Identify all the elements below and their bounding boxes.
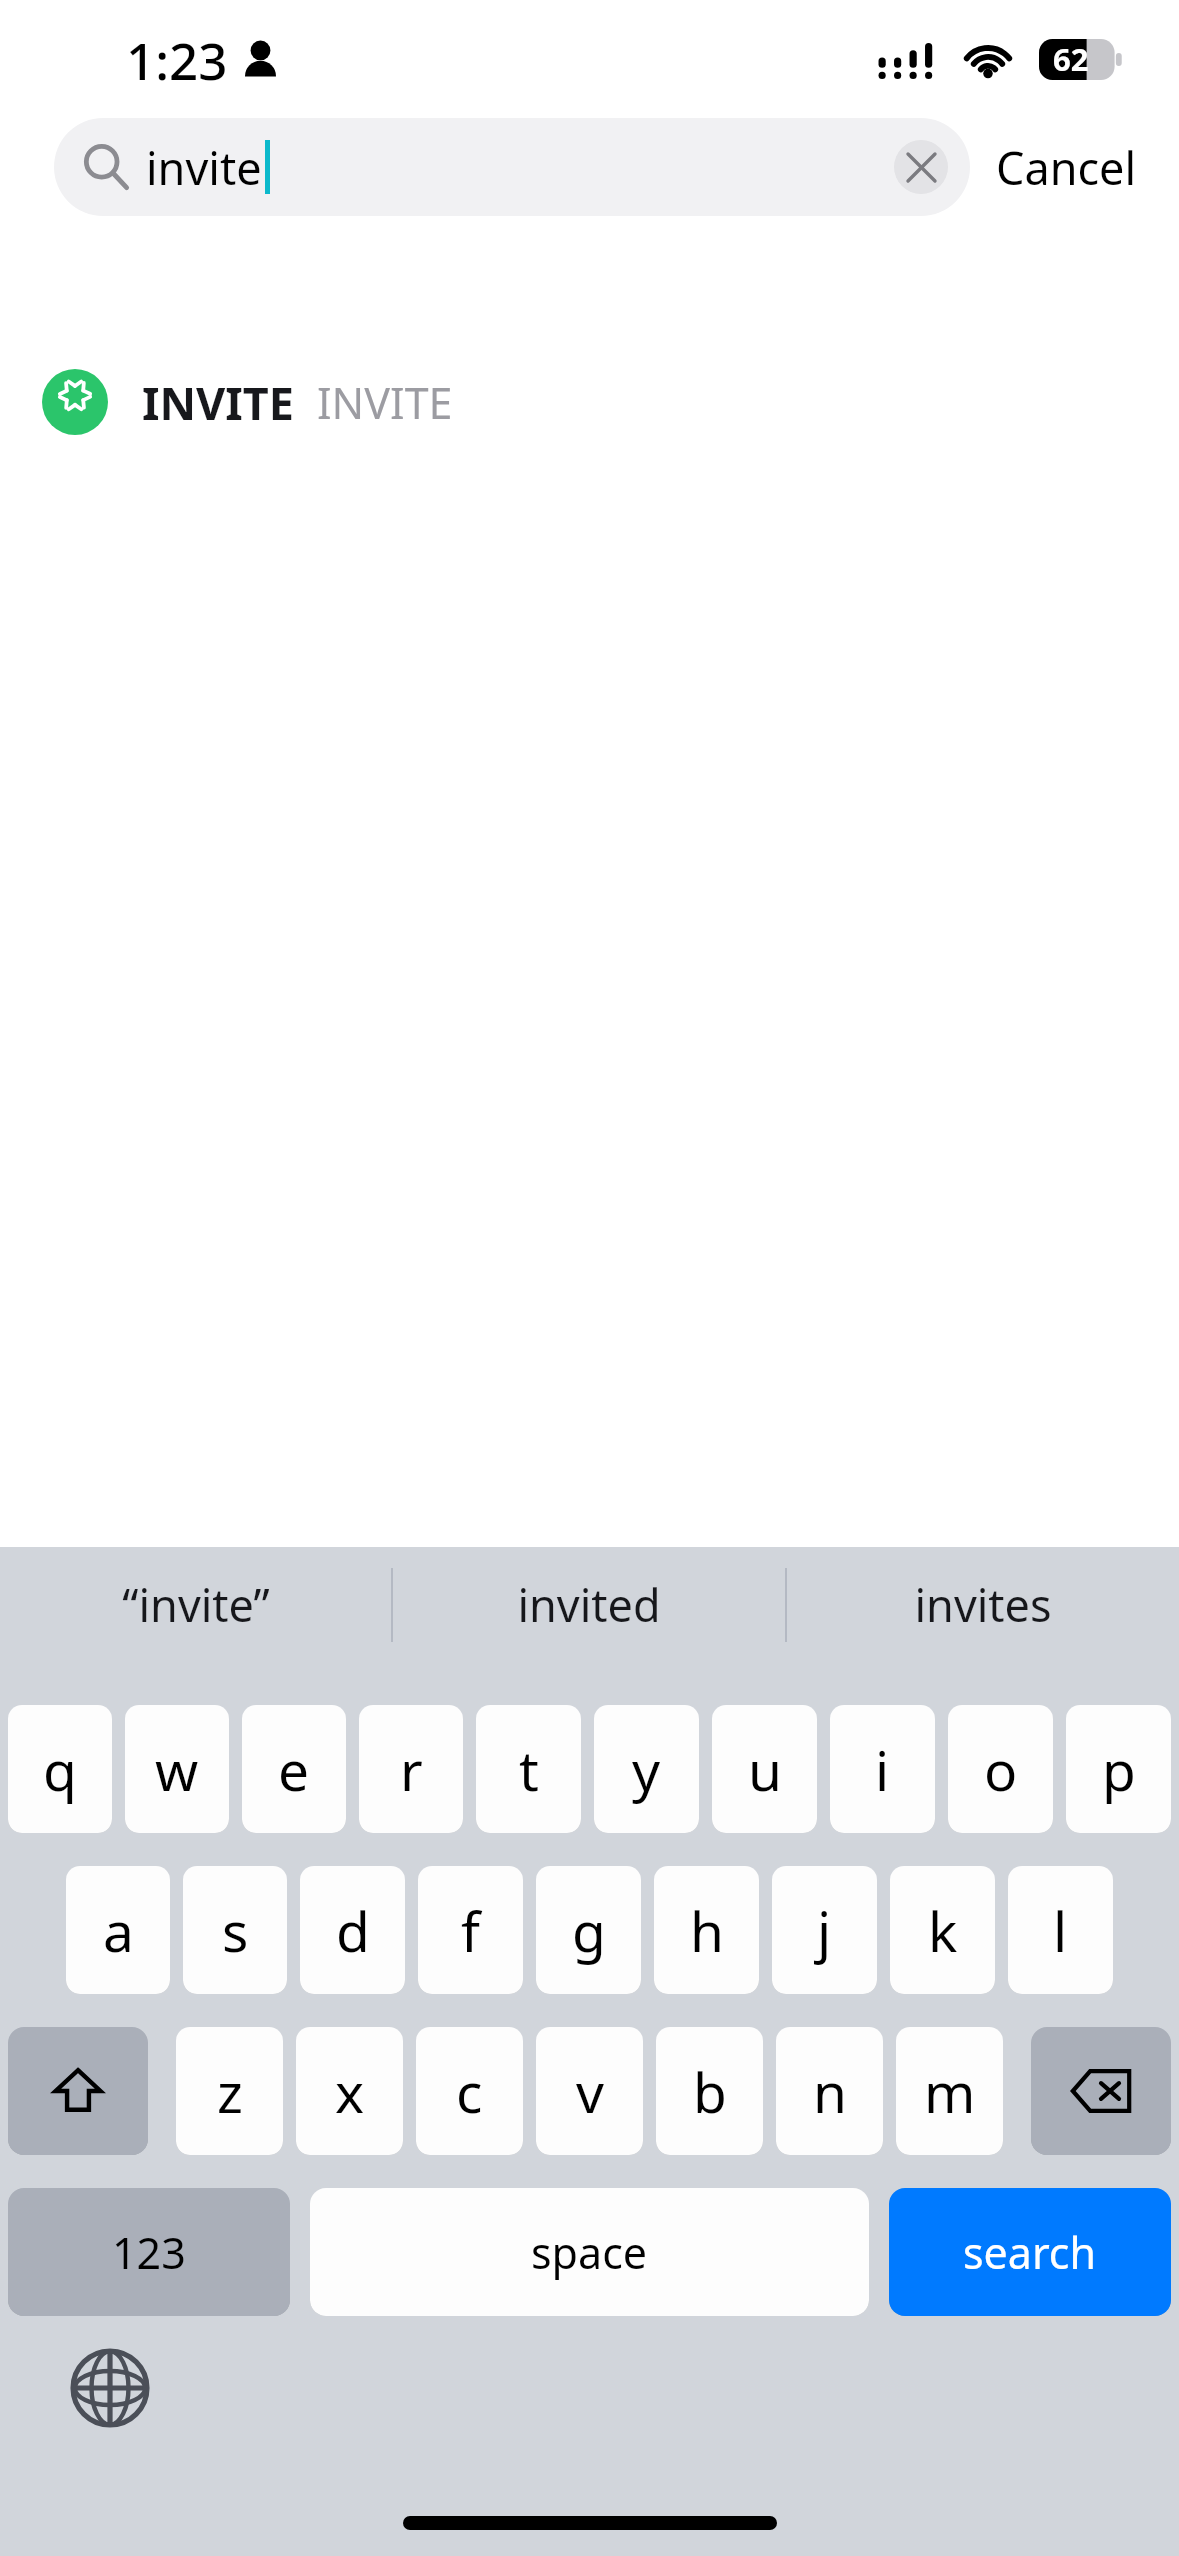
staticText: space — [531, 2223, 648, 2282]
staticText: s — [222, 1893, 249, 1968]
button[interactable]: c — [416, 2027, 523, 2155]
staticText: k — [928, 1893, 958, 1968]
staticText: c — [456, 2054, 483, 2129]
staticText: m — [924, 2054, 976, 2129]
button[interactable]: g — [536, 1866, 641, 1994]
button[interactable]: 123 — [8, 2188, 290, 2316]
staticText: 123 — [112, 2223, 186, 2282]
staticText: b — [693, 2054, 727, 2129]
button[interactable]: Switch keyboard language — [60, 2338, 160, 2438]
staticText: w — [155, 1732, 199, 1807]
button[interactable]: q — [8, 1705, 112, 1833]
staticText: 62 — [1053, 38, 1089, 80]
button[interactable]: n — [776, 2027, 883, 2155]
staticText: INVITE — [142, 372, 295, 433]
staticText: e — [278, 1732, 310, 1807]
staticText: z — [217, 2054, 243, 2129]
staticText: Cancel — [996, 137, 1137, 198]
button[interactable]: l — [1008, 1866, 1113, 1994]
button[interactable]: e — [242, 1705, 346, 1833]
button[interactable]: z — [176, 2027, 283, 2155]
staticText: g — [572, 1893, 606, 1968]
button[interactable]: k — [890, 1866, 995, 1994]
staticText: a — [103, 1893, 134, 1968]
button[interactable]: invite — [54, 118, 970, 216]
button[interactable]: w — [125, 1705, 229, 1833]
staticText: invites — [914, 1574, 1052, 1635]
button[interactable]: x — [296, 2027, 403, 2155]
staticText: o — [984, 1732, 1018, 1807]
button[interactable]: Clear search text — [894, 140, 948, 194]
button[interactable]: Delete — [1031, 2027, 1171, 2155]
button[interactable]: j — [772, 1866, 877, 1994]
button[interactable]: r — [359, 1705, 463, 1833]
button[interactable]: INVITE — [0, 354, 1179, 450]
staticText: r — [400, 1732, 423, 1807]
button[interactable]: Cancel — [970, 125, 1137, 210]
staticText: j — [817, 1893, 832, 1968]
button[interactable]: h — [654, 1866, 759, 1994]
button[interactable]: space — [310, 2188, 869, 2316]
button[interactable]: f — [418, 1866, 523, 1994]
staticText: q — [43, 1732, 77, 1807]
staticText: l — [1053, 1893, 1068, 1968]
button[interactable]: t — [476, 1705, 581, 1833]
staticText: d — [336, 1893, 370, 1968]
staticText: x — [335, 2054, 365, 2129]
button[interactable]: d — [300, 1866, 405, 1994]
button[interactable]: u — [712, 1705, 817, 1833]
button[interactable]: “invite” — [0, 1547, 391, 1662]
button[interactable]: search — [889, 2188, 1171, 2316]
staticText: “invite” — [122, 1574, 270, 1635]
button[interactable]: invites — [787, 1547, 1179, 1662]
staticText: INVITE — [317, 373, 453, 432]
staticText: h — [690, 1893, 724, 1968]
staticText: f — [461, 1893, 480, 1968]
staticText: t — [519, 1732, 539, 1807]
staticText: v — [576, 2054, 604, 2129]
staticText: 1:23 — [126, 25, 228, 94]
button[interactable]: a — [66, 1866, 170, 1994]
button[interactable]: b — [656, 2027, 763, 2155]
staticText: invited — [517, 1574, 661, 1635]
staticText: i — [875, 1732, 890, 1807]
button[interactable]: y — [594, 1705, 699, 1833]
button[interactable]: m — [896, 2027, 1003, 2155]
staticText: n — [813, 2054, 847, 2129]
staticText: invite — [146, 137, 262, 198]
button[interactable]: i — [830, 1705, 935, 1833]
button[interactable]: invited — [393, 1547, 785, 1662]
staticText: p — [1102, 1732, 1136, 1807]
staticText: y — [632, 1732, 661, 1807]
button[interactable]: o — [948, 1705, 1053, 1833]
button[interactable]: v — [536, 2027, 643, 2155]
button[interactable]: p — [1066, 1705, 1171, 1833]
staticText: u — [748, 1732, 782, 1807]
button[interactable]: s — [183, 1866, 287, 1994]
button[interactable]: Shift — [8, 2027, 148, 2155]
staticText: search — [963, 2223, 1097, 2282]
